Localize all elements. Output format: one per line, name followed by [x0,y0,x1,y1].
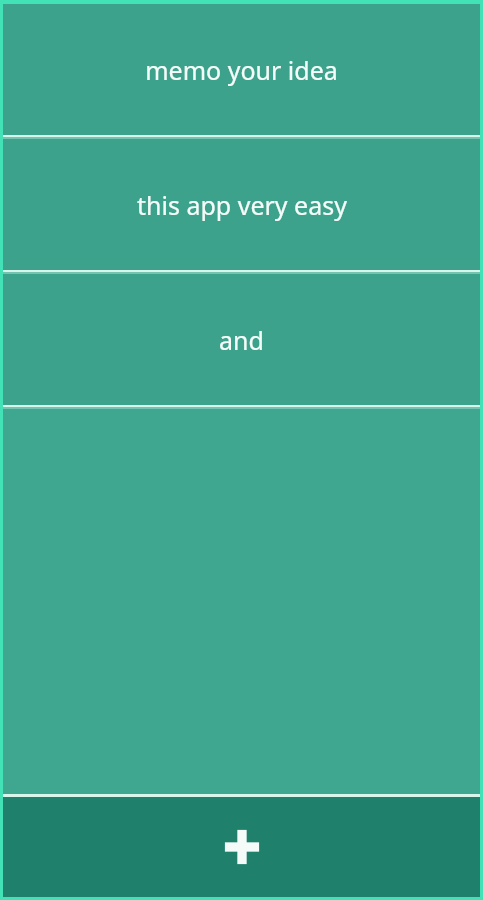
staticText: memo your idea [145,53,338,87]
staticText: this app very easy [137,188,347,222]
button[interactable]: memo your idea [3,4,480,135]
button[interactable]: this app very easy [3,139,480,270]
staticText: and [219,323,264,357]
button[interactable]: and [3,274,480,405]
button[interactable]: Add memo [3,797,480,897]
